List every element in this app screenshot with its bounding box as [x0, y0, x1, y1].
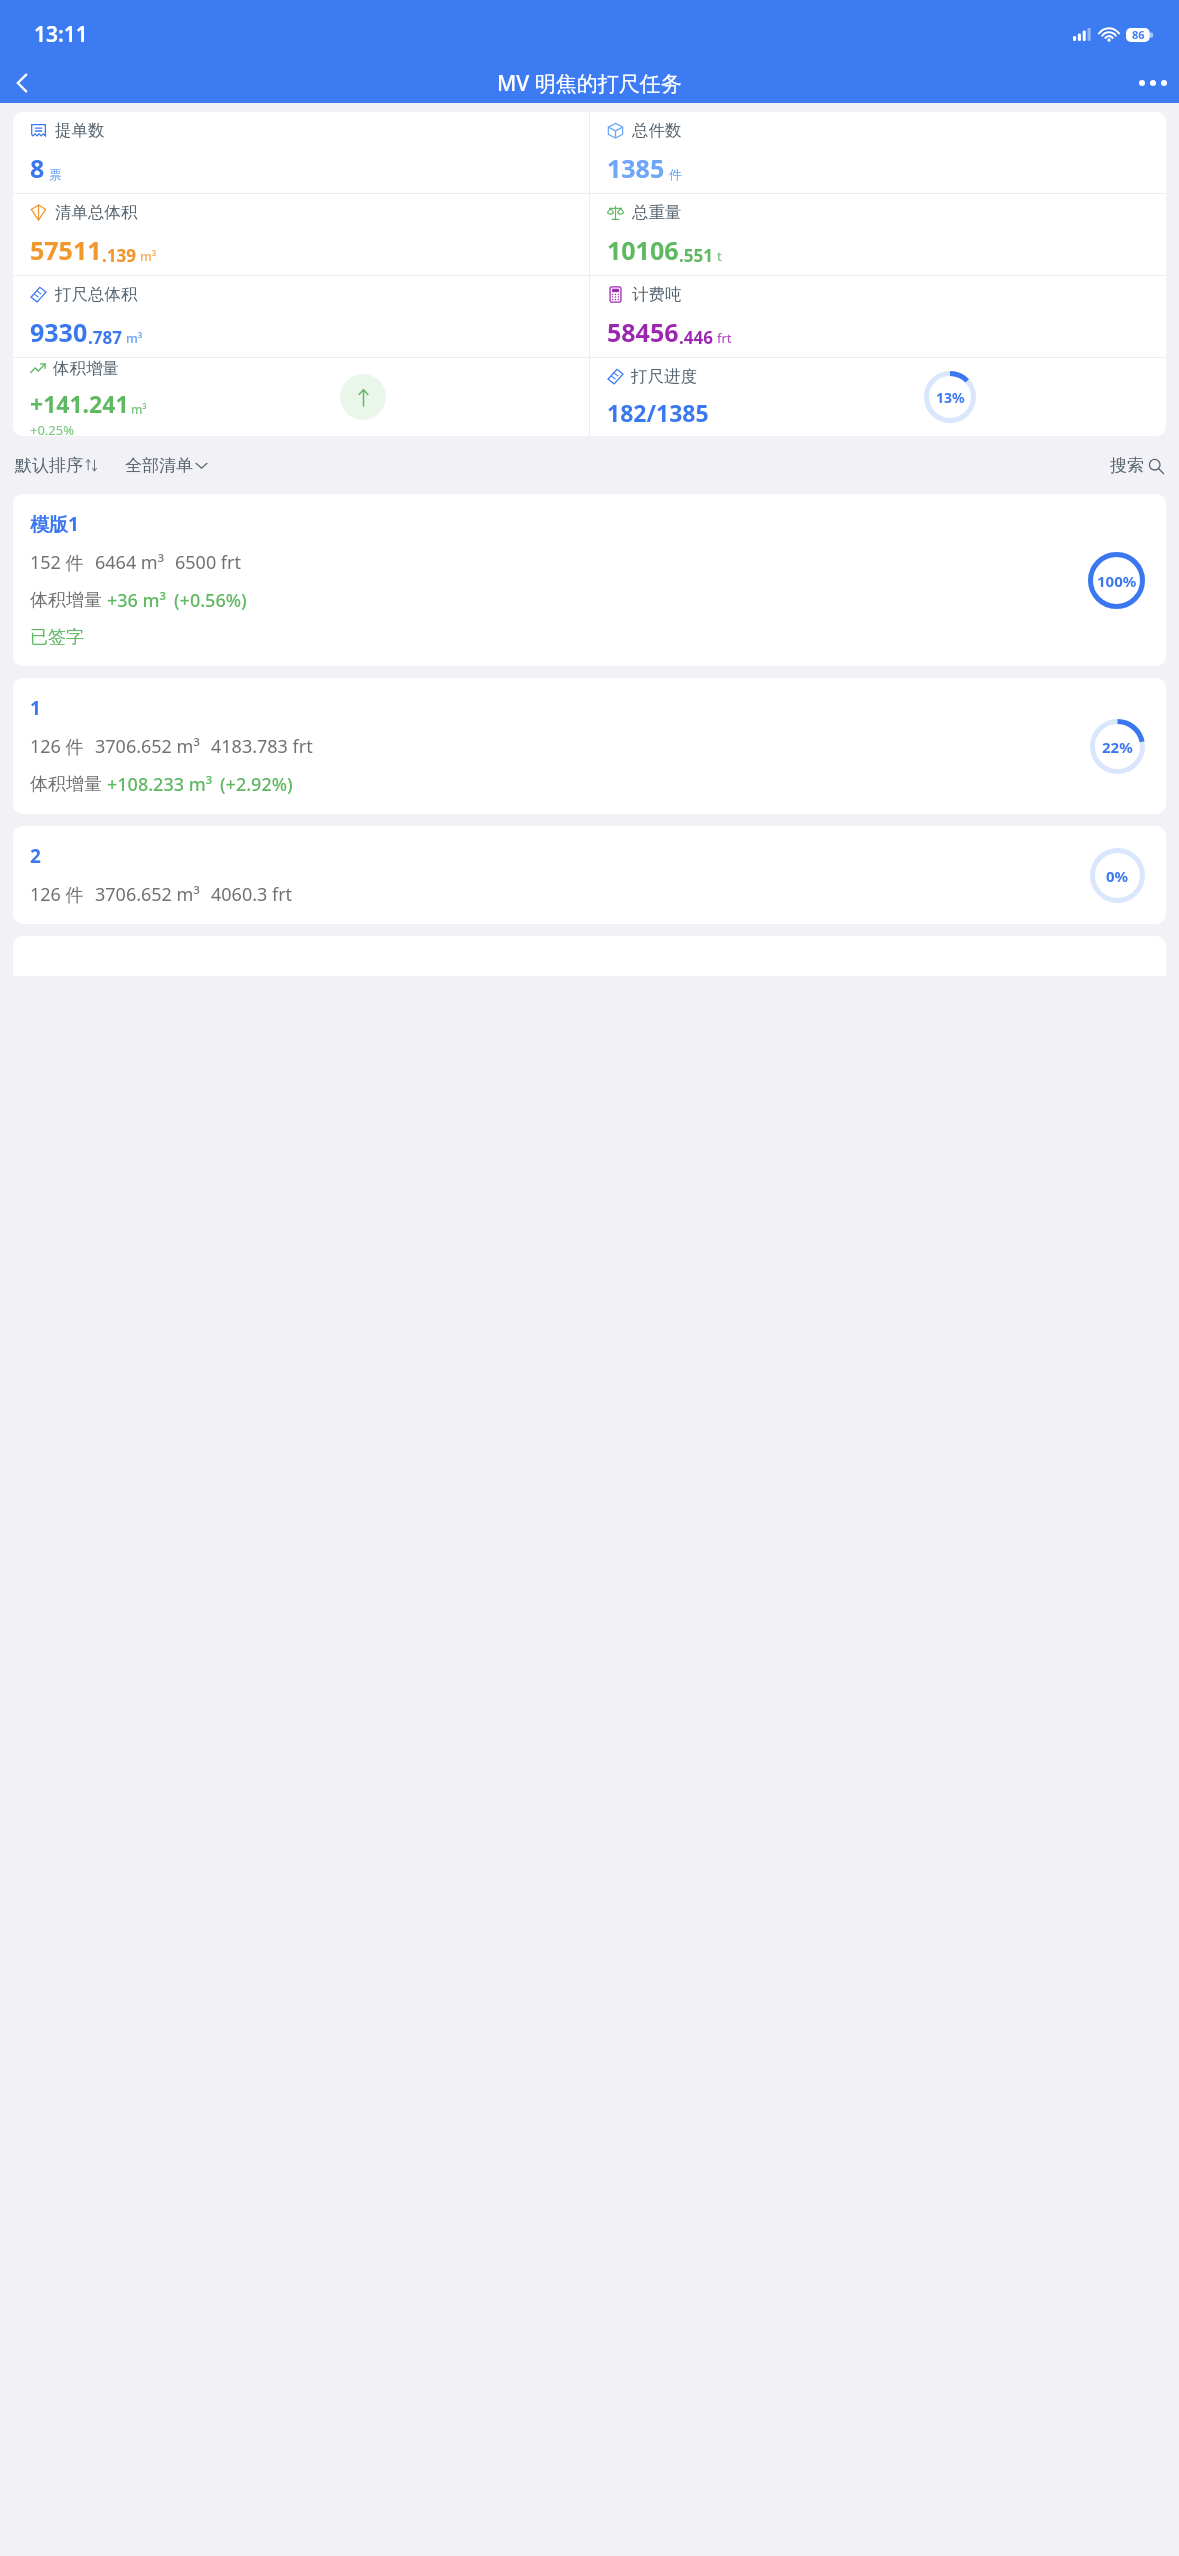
staticText: 全部清单: [125, 455, 193, 476]
staticText: 体积增量: [53, 358, 119, 379]
staticText: +141.241: [30, 388, 129, 419]
button[interactable]: 1: [13, 678, 1166, 814]
staticText: t: [717, 248, 722, 265]
button[interactable]: 全部清单: [123, 449, 209, 482]
staticText: 58456: [607, 315, 679, 349]
staticText: 126 件: [30, 882, 84, 907]
staticText: 票: [49, 167, 62, 183]
staticText: .551: [679, 244, 713, 267]
staticText: (+2.92%): [220, 772, 293, 797]
staticText: 体积增量: [30, 773, 102, 796]
button[interactable]: 2: [13, 826, 1166, 924]
staticText: MV 明焦的打尺任务: [497, 69, 682, 98]
staticText: +0.25%: [30, 421, 75, 436]
staticText: 总重量: [632, 202, 682, 223]
staticText: 总件数: [632, 120, 682, 141]
button[interactable]: 默认排序: [13, 449, 101, 482]
staticText: 6464 m³: [95, 550, 164, 575]
button[interactable]: 搜索: [1108, 449, 1166, 482]
button[interactable]: 计费吨: [590, 276, 1166, 357]
staticText: 4060.3 frt: [211, 882, 293, 907]
staticText: 清单总体积: [55, 202, 138, 223]
staticText: 计费吨: [632, 284, 682, 305]
staticText: 9330: [30, 315, 88, 349]
staticText: .787: [88, 326, 122, 349]
button[interactable]: 提单数: [13, 112, 589, 193]
staticText: 打尺总体积: [55, 284, 138, 305]
staticText: 86: [1132, 27, 1145, 42]
staticText: (+0.56%): [174, 588, 247, 613]
staticText: 57511: [30, 233, 102, 267]
staticText: m³: [131, 401, 147, 417]
staticText: +108.233 m³: [107, 772, 213, 797]
staticText: .139: [102, 244, 136, 267]
button[interactable]: 模版1: [13, 494, 1166, 666]
staticText: 4183.783 frt: [211, 734, 313, 759]
staticText: m³: [140, 248, 157, 265]
staticText: 1: [30, 695, 41, 721]
button[interactable]: 打尺进度: [590, 358, 1166, 436]
staticText: 模版1: [30, 511, 79, 537]
staticText: +36 m³: [107, 588, 167, 613]
staticText: 100%: [1097, 571, 1137, 591]
staticText: 10106: [607, 233, 679, 267]
staticText: 182/1385: [607, 397, 709, 428]
staticText: 0%: [1106, 866, 1129, 886]
staticText: 13:11: [34, 20, 88, 49]
button[interactable]: 打尺总体积: [13, 276, 589, 357]
staticText: frt: [717, 330, 732, 347]
staticText: 13%: [936, 388, 965, 407]
staticText: 已签字: [30, 626, 84, 649]
staticText: 提单数: [55, 120, 105, 141]
staticText: 126 件: [30, 734, 84, 759]
staticText: 打尺进度: [631, 366, 697, 387]
button[interactable]: Back: [0, 63, 46, 103]
button[interactable]: 清单总体积: [13, 194, 589, 275]
staticText: 3706.652 m³: [95, 882, 200, 907]
staticText: 默认排序: [15, 455, 83, 476]
staticText: 搜索: [1110, 455, 1144, 476]
staticText: .446: [679, 326, 713, 349]
staticText: 体积增量: [30, 589, 102, 612]
staticText: m³: [126, 330, 143, 347]
staticText: 6500 frt: [175, 550, 241, 575]
button[interactable]: 总重量: [590, 194, 1166, 275]
staticText: 3706.652 m³: [95, 734, 200, 759]
staticText: 2: [30, 843, 41, 869]
staticText: 22%: [1102, 737, 1133, 757]
button[interactable]: 总件数: [590, 112, 1166, 193]
button[interactable]: More options: [1127, 63, 1179, 103]
staticText: 1385: [607, 151, 665, 185]
staticText: 152 件: [30, 550, 84, 575]
staticText: 8: [30, 151, 45, 185]
staticText: 件: [669, 167, 682, 183]
button[interactable]: 体积增量: [13, 358, 589, 436]
